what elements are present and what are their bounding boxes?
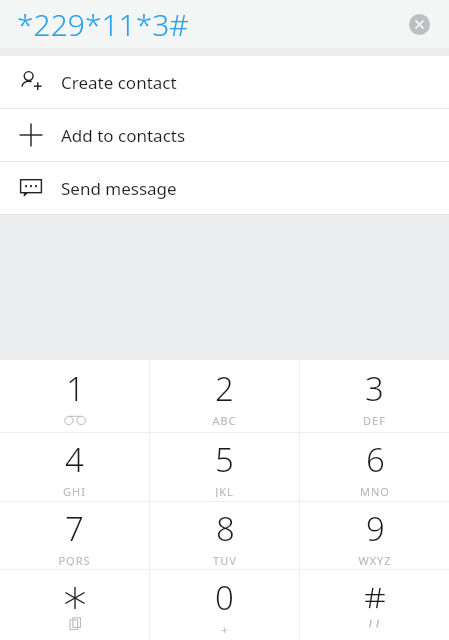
button[interactable]: 4 (0, 433, 149, 501)
button[interactable]: Send message (0, 162, 449, 214)
staticText: Send message (61, 177, 177, 200)
button[interactable] (300, 570, 449, 640)
staticText: 5 (215, 437, 234, 482)
button[interactable]: Clear (403, 8, 435, 40)
button[interactable] (0, 570, 149, 640)
staticText: GHI (63, 484, 86, 497)
staticText: 2 (215, 366, 234, 411)
staticText: 4 (65, 437, 84, 482)
staticText: MNO (360, 484, 390, 497)
button[interactable]: 8 (150, 502, 299, 569)
staticText: WXYZ (358, 553, 392, 566)
staticText: ABC (212, 413, 237, 426)
button[interactable]: 2 (150, 360, 299, 432)
staticText: Create contact (61, 71, 177, 94)
button[interactable]: 5 (150, 433, 299, 501)
staticText: 3 (365, 366, 384, 411)
staticText: TUV (213, 553, 237, 566)
staticText: 7 (65, 506, 84, 551)
staticText: + (221, 622, 229, 635)
staticText: Add to contacts (61, 124, 186, 147)
button[interactable]: Create contact (0, 56, 449, 108)
staticText: 9 (366, 506, 385, 551)
button[interactable]: Add to contacts (0, 109, 449, 161)
button[interactable]: 1 (0, 360, 149, 432)
staticText: 8 (216, 506, 235, 551)
staticText: JKL (215, 484, 234, 497)
button[interactable]: 0 (150, 570, 299, 640)
staticText: 6 (366, 437, 385, 482)
button[interactable]: 9 (300, 502, 449, 569)
staticText: PQRS (58, 553, 91, 566)
button[interactable]: 3 (300, 360, 449, 432)
staticText: 1 (66, 366, 85, 411)
button[interactable]: 6 (300, 433, 449, 501)
button[interactable]: 7 (0, 502, 149, 569)
staticText: *229*11*3# (17, 4, 189, 45)
staticText: 0 (215, 575, 234, 620)
staticText: DEF (363, 413, 386, 426)
